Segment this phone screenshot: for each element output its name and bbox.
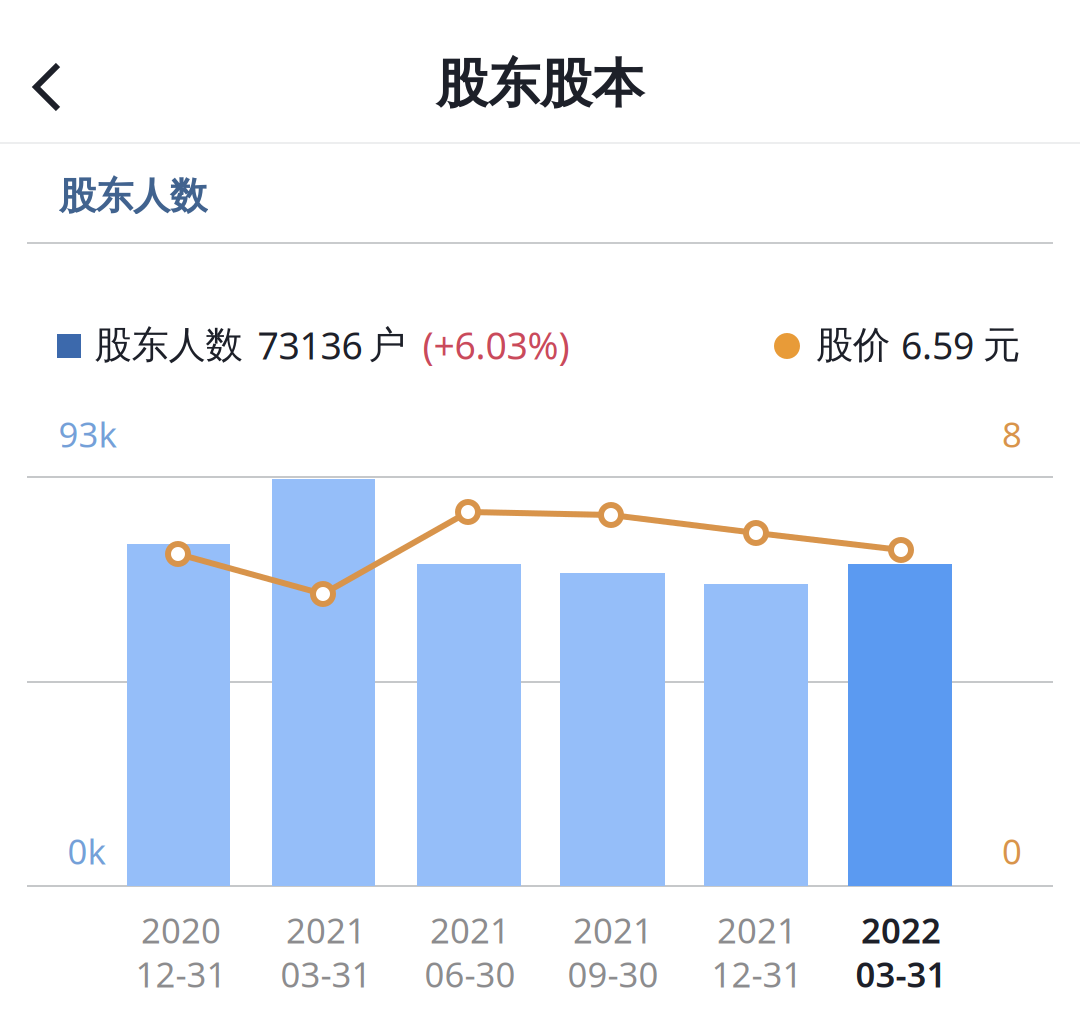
staticText: 2021 bbox=[286, 907, 366, 953]
staticText: 06-30 bbox=[424, 951, 515, 997]
staticText: 户 bbox=[368, 322, 405, 368]
staticText: 2021 bbox=[717, 907, 797, 953]
staticText: 2022 bbox=[861, 907, 941, 953]
staticText: 03-31 bbox=[855, 951, 946, 997]
staticText: 2021 bbox=[430, 907, 510, 953]
staticText: 73136 bbox=[257, 320, 362, 370]
staticText: 0k bbox=[67, 828, 106, 874]
staticText: 元 bbox=[983, 322, 1020, 368]
staticText: 09-30 bbox=[567, 951, 658, 997]
staticText: 股东人数 bbox=[94, 322, 242, 368]
staticText: 12-31 bbox=[135, 951, 226, 997]
staticText: 8 bbox=[1002, 411, 1022, 457]
staticText: 2021 bbox=[573, 907, 653, 953]
staticText: 股东股本 bbox=[436, 52, 644, 116]
staticText: 0 bbox=[1002, 828, 1022, 874]
staticText: 股东人数 bbox=[59, 173, 207, 219]
staticText: (+6.03%) bbox=[422, 320, 569, 370]
staticText: 股价 bbox=[816, 322, 890, 368]
staticText: 2020 bbox=[141, 907, 221, 953]
staticText: 12-31 bbox=[711, 951, 802, 997]
staticText: 03-31 bbox=[280, 951, 371, 997]
staticText: 6.59 bbox=[901, 320, 974, 370]
button[interactable]: Back bbox=[0, 46, 94, 128]
staticText: 93k bbox=[58, 411, 117, 457]
